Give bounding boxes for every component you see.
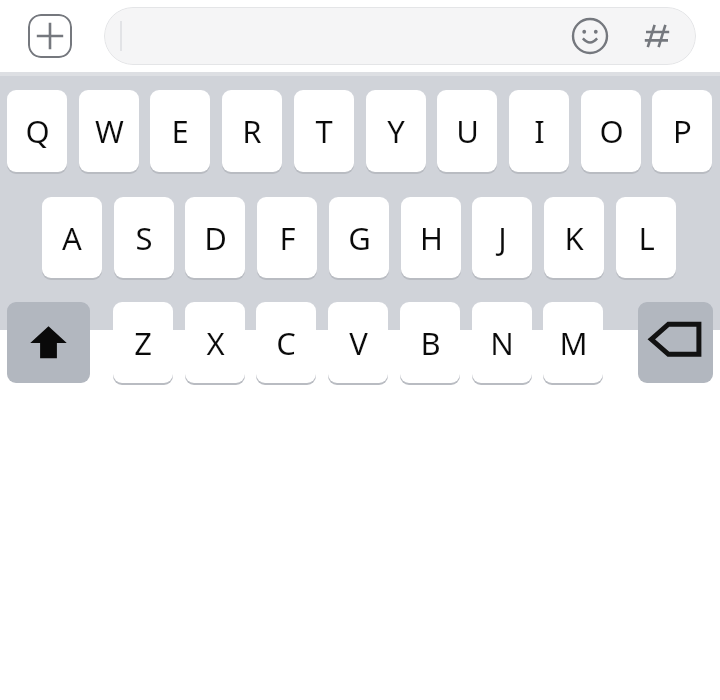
button[interactable]: Add attachment xyxy=(28,14,72,58)
button[interactable]: Emoji xyxy=(104,7,696,65)
button[interactable]: Z xyxy=(113,302,173,383)
staticText: E xyxy=(171,110,189,152)
staticText: P xyxy=(673,110,692,152)
button[interactable]: H xyxy=(401,197,461,278)
button[interactable]: N xyxy=(472,302,532,383)
staticText: Z xyxy=(134,322,152,364)
button[interactable]: Shift xyxy=(7,302,90,383)
button[interactable]: K xyxy=(544,197,604,278)
staticText: X xyxy=(206,322,225,364)
button[interactable]: F xyxy=(257,197,317,278)
staticText: V xyxy=(349,322,368,364)
staticText: M xyxy=(559,322,588,364)
staticText: O xyxy=(599,110,624,152)
staticText: W xyxy=(95,110,124,152)
button[interactable]: Y xyxy=(366,90,426,172)
staticText: F xyxy=(279,217,296,259)
staticText: N xyxy=(490,322,514,364)
button[interactable]: L xyxy=(616,197,676,278)
staticText: B xyxy=(420,322,441,364)
button[interactable]: U xyxy=(437,90,497,172)
staticText: L xyxy=(638,217,655,259)
staticText: G xyxy=(348,217,371,259)
button[interactable]: Hashtag xyxy=(638,16,678,56)
button[interactable]: E xyxy=(150,90,210,172)
button[interactable]: M xyxy=(543,302,603,383)
button[interactable]: A xyxy=(42,197,102,278)
button[interactable]: P xyxy=(652,90,712,172)
button[interactable]: G xyxy=(329,197,389,278)
staticText: S xyxy=(135,217,153,259)
button[interactable]: B xyxy=(400,302,460,383)
button[interactable]: O xyxy=(581,90,641,172)
staticText: Q xyxy=(25,110,50,152)
staticText: K xyxy=(564,217,584,259)
button[interactable]: X xyxy=(185,302,245,383)
staticText: R xyxy=(242,110,262,152)
button[interactable]: J xyxy=(472,197,532,278)
staticText: T xyxy=(315,110,333,152)
button[interactable]: Emoji xyxy=(570,16,610,56)
button[interactable]: S xyxy=(114,197,174,278)
staticText: U xyxy=(456,110,479,152)
button[interactable]: R xyxy=(222,90,282,172)
button[interactable]: Q xyxy=(7,90,67,172)
staticText: H xyxy=(420,217,443,259)
button[interactable]: V xyxy=(328,302,388,383)
staticText: A xyxy=(62,217,82,259)
staticText: I xyxy=(534,110,545,152)
button[interactable]: T xyxy=(294,90,354,172)
button[interactable]: D xyxy=(185,197,245,278)
button[interactable]: C xyxy=(256,302,316,383)
staticText: C xyxy=(276,322,296,364)
staticText: Y xyxy=(387,110,405,152)
staticText: J xyxy=(498,217,507,259)
button[interactable]: Backspace xyxy=(638,302,713,383)
button[interactable]: W xyxy=(79,90,139,172)
button[interactable]: I xyxy=(509,90,569,172)
staticText: D xyxy=(204,217,227,259)
